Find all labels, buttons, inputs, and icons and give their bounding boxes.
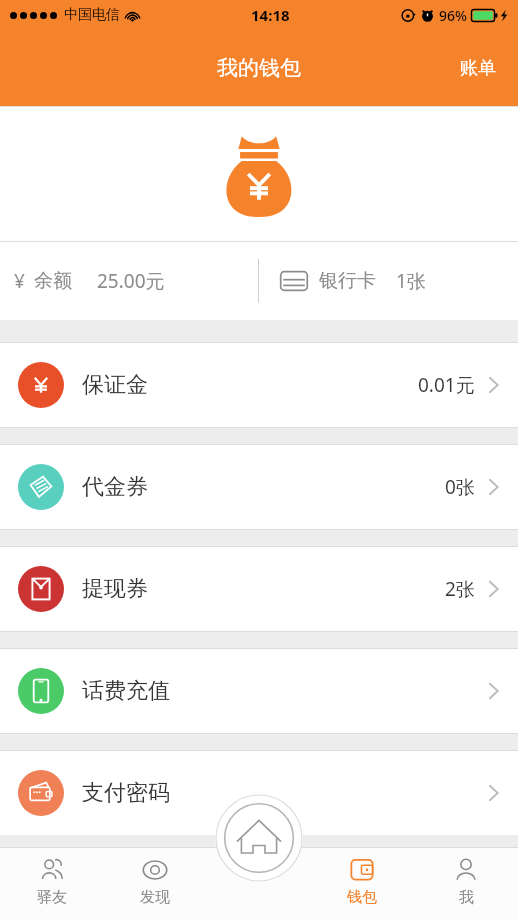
staticText: 银行卡 bbox=[319, 269, 376, 293]
button[interactable]: Home bbox=[215, 794, 303, 882]
staticText: 代金券 bbox=[82, 473, 148, 501]
staticText: 0张 bbox=[445, 474, 475, 500]
button[interactable]: 话费充值 bbox=[0, 649, 518, 733]
staticText: 96% bbox=[439, 6, 467, 25]
button[interactable]: 钱包 bbox=[310, 848, 414, 920]
staticText: 提现券 bbox=[82, 575, 148, 603]
button[interactable]: 我 bbox=[414, 848, 518, 920]
button[interactable]: 提现券 bbox=[0, 547, 518, 631]
staticText: 我 bbox=[459, 888, 474, 907]
button[interactable]: 驿友 bbox=[0, 848, 103, 920]
staticText: 话费充值 bbox=[82, 677, 170, 705]
staticText: 钱包 bbox=[347, 888, 377, 907]
staticText: 我的钱包 bbox=[217, 55, 301, 81]
button[interactable]: ¥ bbox=[0, 242, 258, 320]
staticText: 保证金 bbox=[82, 371, 148, 399]
button[interactable]: 账单 bbox=[438, 47, 518, 90]
staticText: 发现 bbox=[140, 888, 170, 907]
staticText: 14:18 bbox=[251, 5, 290, 25]
staticText: 支付密码 bbox=[82, 779, 170, 807]
staticText: 25.00元 bbox=[97, 268, 165, 294]
staticText: 驿友 bbox=[37, 888, 67, 907]
staticText: 1张 bbox=[396, 268, 426, 294]
staticText: 余额 bbox=[34, 269, 72, 293]
button[interactable]: 支付密码 bbox=[0, 751, 518, 835]
staticText: 0.01元 bbox=[418, 372, 475, 398]
button[interactable]: 代金券 bbox=[0, 445, 518, 529]
staticText: 账单 bbox=[460, 57, 496, 80]
button[interactable]: 发现 bbox=[103, 848, 206, 920]
button[interactable]: 银行卡 bbox=[259, 242, 518, 320]
staticText: 2张 bbox=[445, 576, 475, 602]
staticText: 中国电信 bbox=[64, 6, 120, 24]
staticText: ¥ bbox=[14, 268, 25, 294]
button[interactable]: 保证金 bbox=[0, 343, 518, 427]
